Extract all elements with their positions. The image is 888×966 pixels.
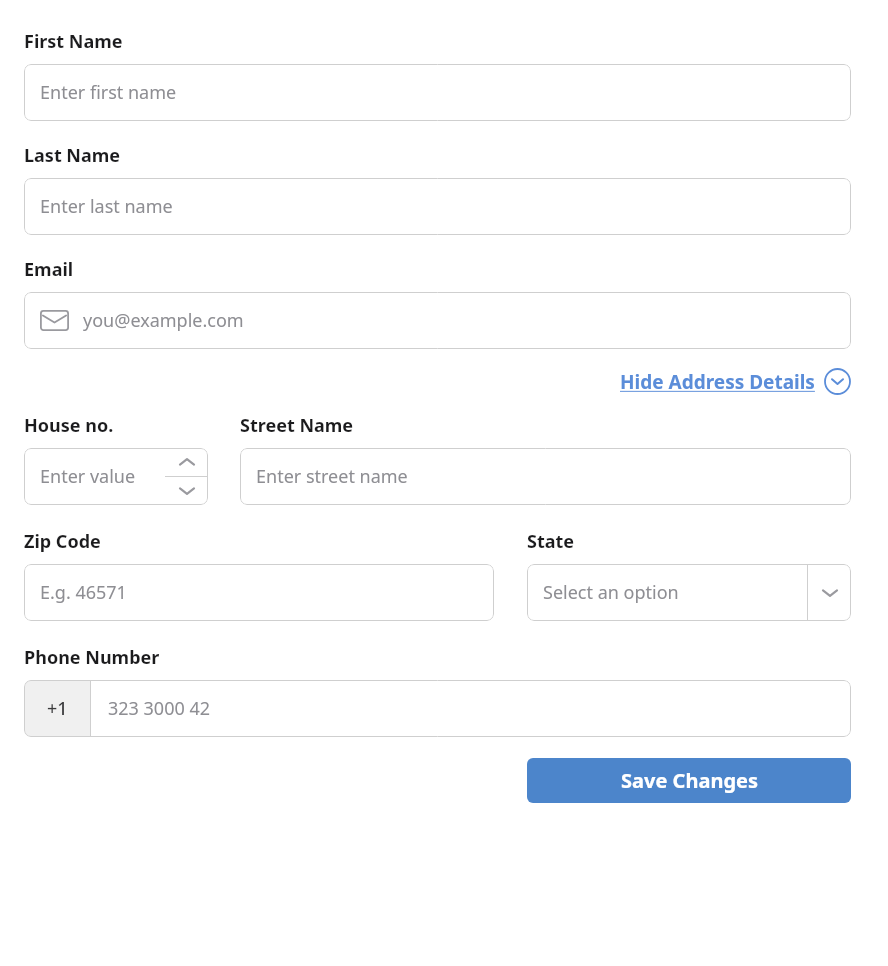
staticText: Email <box>24 257 74 282</box>
button[interactable]: Enter first name <box>24 64 851 121</box>
staticText: House no. <box>24 413 240 438</box>
staticText: Last Name <box>24 143 121 168</box>
staticText: First Name <box>24 29 123 54</box>
staticText: Enter last name <box>40 194 173 219</box>
button[interactable]: Increment <box>165 448 208 476</box>
staticText: you@example.com <box>83 308 244 333</box>
button[interactable]: Enter street name <box>240 448 851 505</box>
staticText: Enter street name <box>256 464 408 489</box>
staticText: Select an option <box>543 580 679 605</box>
button[interactable]: E.g. 46571 <box>24 564 494 621</box>
button[interactable]: Save Changes <box>527 758 851 803</box>
button[interactable]: Decrement <box>165 477 208 505</box>
staticText: 323 3000 42 <box>108 696 211 721</box>
button[interactable]: Enter value <box>24 448 208 505</box>
button[interactable]: Select an option <box>527 564 851 621</box>
staticText: Phone Number <box>24 645 160 670</box>
staticText: +1 <box>47 696 68 721</box>
staticText: Zip Code <box>24 529 527 554</box>
button[interactable]: Enter last name <box>24 178 851 235</box>
staticText: Hide Address Details <box>620 369 815 395</box>
staticText: Save Changes <box>621 767 758 794</box>
button[interactable]: you@example.com <box>24 292 851 349</box>
button[interactable]: +1 <box>24 680 851 737</box>
staticText: Enter first name <box>40 80 177 105</box>
staticText: E.g. 46571 <box>40 580 127 605</box>
staticText: State <box>527 529 575 554</box>
button[interactable]: Hide Address Details <box>620 368 851 395</box>
staticText: Enter value <box>40 464 136 489</box>
other: Hide Address Details <box>824 368 851 395</box>
staticText: Street Name <box>240 413 354 438</box>
